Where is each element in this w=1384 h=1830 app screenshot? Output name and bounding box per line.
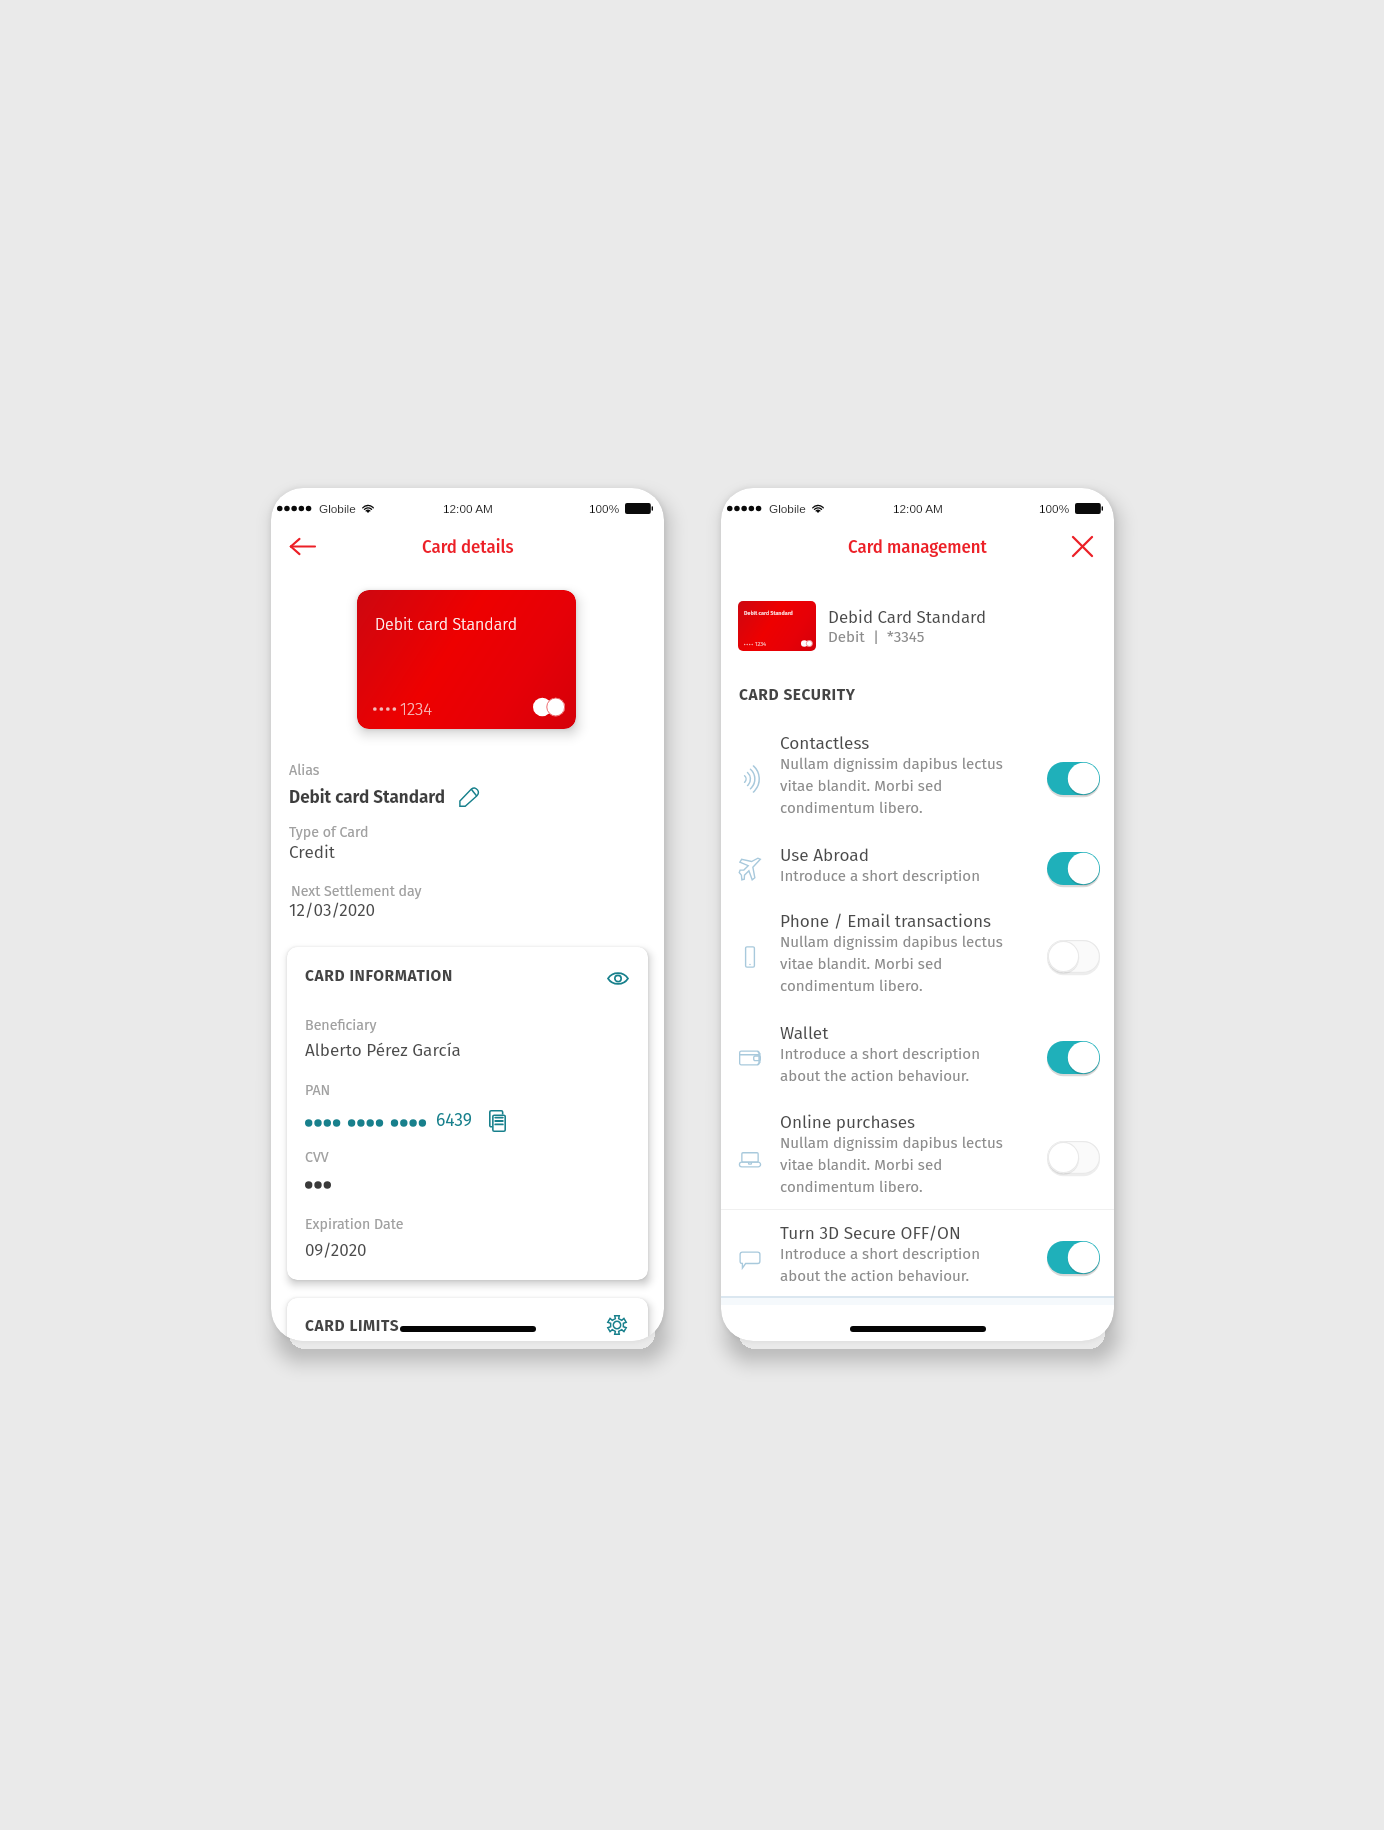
- staticText: 09/2020: [305, 1240, 367, 1261]
- staticText: CARD SECURITY: [739, 686, 856, 705]
- staticText: Nullam dignissim dapibus lectus vitae bl…: [780, 1134, 1006, 1196]
- staticText: Contactless: [780, 733, 870, 754]
- button[interactable]: Back: [281, 525, 323, 567]
- staticText: Wallet: [780, 1023, 829, 1044]
- staticText: Expiration Date: [305, 1216, 404, 1233]
- button[interactable]: Toggle off: [1047, 1141, 1100, 1175]
- staticText: CVV: [305, 1149, 329, 1166]
- staticText: Introduce a short description about the …: [780, 1245, 1006, 1285]
- staticText: 12:00 AM: [443, 502, 493, 515]
- button[interactable]: Toggle off: [1047, 940, 1100, 974]
- button[interactable]: Toggle on: [1047, 1041, 1100, 1075]
- staticText: Debit | *3345: [828, 628, 925, 646]
- staticText: Online purchases: [780, 1112, 916, 1133]
- staticText: Debit card Standard: [289, 787, 445, 808]
- staticText: Alberto Pérez García: [305, 1040, 461, 1061]
- button[interactable]: Contactless: [721, 728, 1114, 829]
- staticText: 1234: [755, 641, 766, 648]
- staticText: Introduce a short description about the …: [780, 1045, 1006, 1085]
- staticText: Next Settlement day: [291, 883, 422, 900]
- button[interactable]: Toggle on: [1047, 1241, 1100, 1275]
- staticText: 100%: [1039, 502, 1070, 515]
- staticText: Credit: [289, 842, 335, 863]
- button[interactable]: Copy PAN: [485, 1109, 509, 1133]
- staticText: Turn 3D Secure OFF/ON: [780, 1223, 961, 1244]
- staticText: Introduce a short description: [780, 867, 981, 885]
- button[interactable]: Phone / Email transactions: [721, 906, 1114, 1007]
- staticText: Nullam dignissim dapibus lectus vitae bl…: [780, 755, 1006, 817]
- staticText: PAN: [305, 1082, 331, 1099]
- staticText: CARD LIMITS: [305, 1317, 400, 1336]
- button[interactable]: Close: [1062, 526, 1102, 566]
- staticText: Use Abroad: [780, 845, 869, 866]
- staticText: Card details: [422, 536, 514, 558]
- staticText: Alias: [289, 762, 320, 779]
- staticText: CARD INFORMATION: [305, 967, 453, 986]
- staticText: Globile: [769, 502, 806, 515]
- staticText: Beneficiary: [305, 1017, 377, 1034]
- button[interactable]: Edit alias: [456, 784, 482, 810]
- staticText: Debid Card Standard: [828, 607, 987, 627]
- staticText: 100%: [589, 502, 620, 515]
- button[interactable]: Use Abroad: [721, 840, 1114, 897]
- staticText: 12:00 AM: [893, 502, 943, 515]
- staticText: 1234: [400, 699, 433, 719]
- staticText: 6439: [436, 1110, 473, 1131]
- staticText: Type of Card: [289, 824, 369, 841]
- staticText: Debit card Standard: [375, 615, 518, 634]
- staticText: Debit card Standard: [744, 610, 800, 616]
- staticText: Card management: [848, 536, 987, 558]
- staticText: Phone / Email transactions: [780, 911, 992, 932]
- button[interactable]: Turn 3D Secure OFF/ON: [721, 1218, 1114, 1297]
- button[interactable]: Toggle on: [1047, 762, 1100, 796]
- staticText: 12/03/2020: [289, 900, 376, 921]
- button[interactable]: Wallet: [721, 1018, 1114, 1097]
- button[interactable]: Online purchases: [721, 1107, 1114, 1208]
- button[interactable]: Card limits settings: [604, 1312, 630, 1338]
- button[interactable]: Debit card Standard: [738, 601, 1068, 651]
- staticText: Globile: [319, 502, 356, 515]
- button[interactable]: Toggle on: [1047, 852, 1100, 886]
- staticText: Nullam dignissim dapibus lectus vitae bl…: [780, 933, 1006, 995]
- button[interactable]: Show card information: [605, 965, 631, 991]
